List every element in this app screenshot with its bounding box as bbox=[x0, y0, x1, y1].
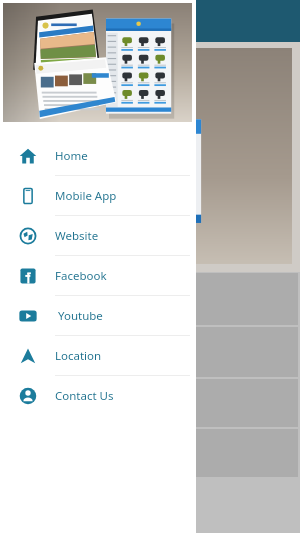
staticText: Website bbox=[55, 228, 99, 244]
button[interactable]: Location bbox=[0, 336, 196, 375]
button[interactable]: Contact Us bbox=[0, 376, 196, 415]
staticText: Location bbox=[55, 348, 102, 364]
button[interactable]: Home bbox=[0, 136, 196, 175]
staticText: Facebook bbox=[55, 268, 107, 284]
staticText: Contact Us bbox=[55, 388, 114, 404]
button[interactable]: Youtube bbox=[0, 296, 196, 335]
staticText: LOCATION bbox=[12, 396, 64, 410]
button[interactable]: SERVICE bbox=[2, 429, 298, 477]
button[interactable] bbox=[0, 0, 196, 128]
button[interactable]: Website bbox=[0, 216, 196, 255]
staticText: Youtube bbox=[58, 308, 103, 324]
button[interactable]: Mobile App bbox=[0, 176, 196, 215]
button[interactable] bbox=[2, 327, 298, 377]
button[interactable]: LOCATION bbox=[2, 379, 298, 427]
staticText: Home bbox=[55, 148, 88, 164]
staticText: Mobile App bbox=[55, 188, 117, 204]
button[interactable]: Facebook bbox=[0, 256, 196, 295]
button[interactable] bbox=[2, 273, 298, 325]
